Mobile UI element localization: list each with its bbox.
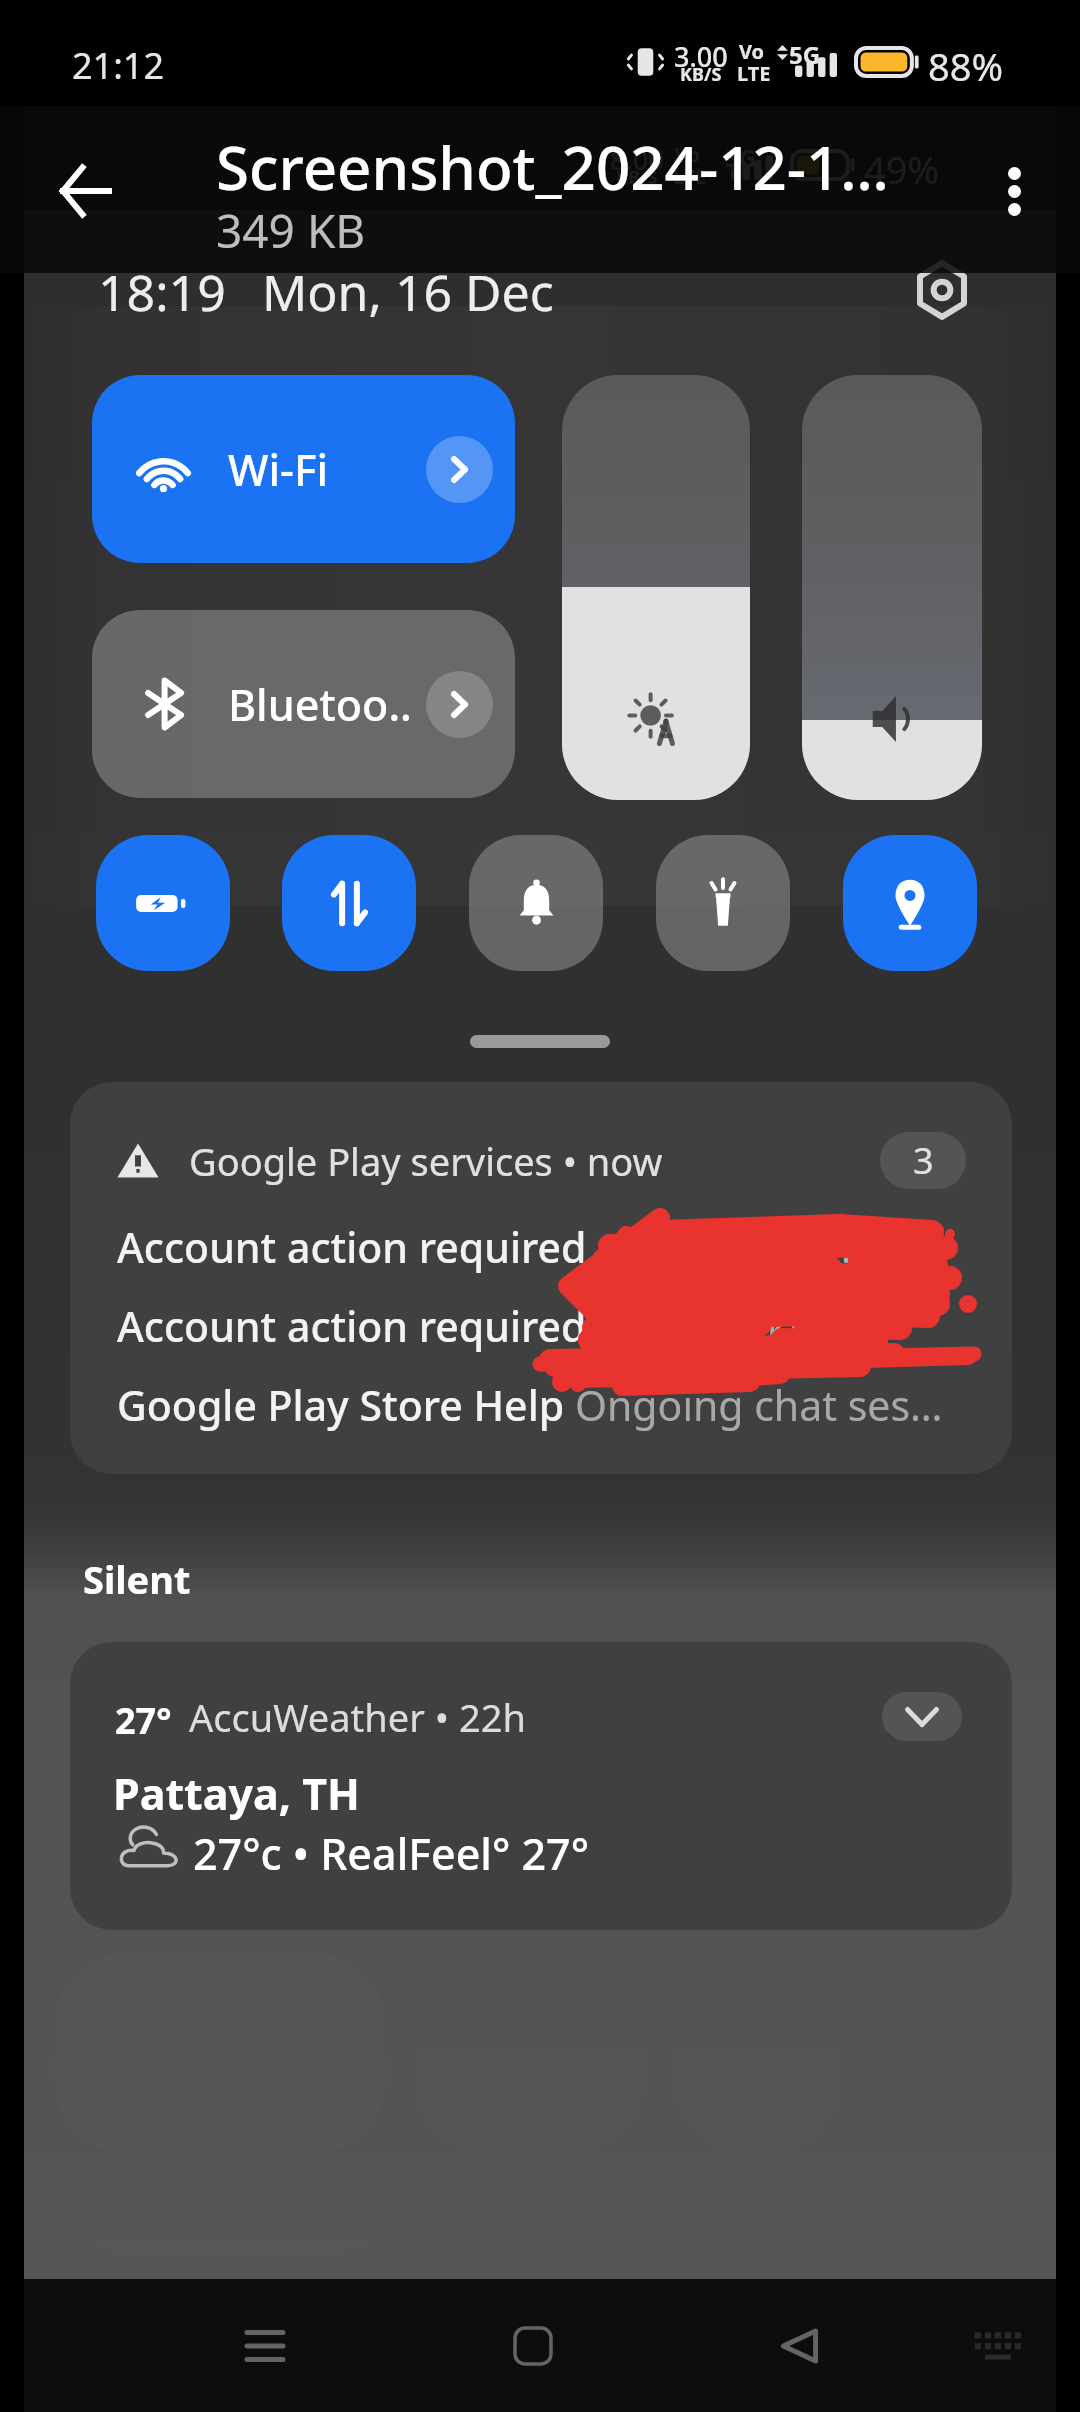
- staticText: 8.00: [610, 141, 664, 178]
- button[interactable]: Location: [843, 835, 977, 971]
- staticText: Google Play Store Help: [117, 1377, 575, 1433]
- staticText: 349 KB: [216, 199, 366, 262]
- button[interactable]: Mobile data: [282, 835, 416, 971]
- staticText: LTE: [673, 163, 707, 190]
- staticText: 27°: [115, 1696, 172, 1745]
- button[interactable]: Ring mode: [469, 835, 603, 971]
- button[interactable]: Back: [747, 2294, 851, 2398]
- staticText: Pattaya, TH: [113, 1764, 360, 1823]
- staticText: Ongoing chat ses…: [575, 1377, 943, 1433]
- staticText: nuu……… k@…: [598, 1219, 874, 1275]
- button[interactable]: More options: [962, 139, 1066, 243]
- button[interactable]: Flashlight: [656, 835, 790, 971]
- staticText: 21:12: [72, 41, 165, 90]
- staticText: 88%: [928, 40, 1004, 92]
- button[interactable]: Expand: [882, 1692, 962, 1741]
- staticText: LTE: [737, 60, 771, 87]
- staticText: 5G: [789, 38, 821, 71]
- staticText: AccuWeather • 22h: [189, 1691, 526, 1743]
- staticText: Silent: [83, 1553, 191, 1605]
- button[interactable]: 27°: [70, 1642, 1012, 1930]
- button[interactable]: Home: [481, 2294, 585, 2398]
- staticText: KB/S: [680, 62, 722, 87]
- staticText: Vo: [739, 38, 765, 65]
- staticText: Vo: [675, 141, 701, 168]
- staticText: Bluetoo..: [228, 675, 412, 734]
- button[interactable]: Recents: [213, 2294, 317, 2398]
- staticText: 3: [913, 1136, 934, 1185]
- button[interactable]: Settings: [898, 246, 986, 334]
- staticText: Google Play services • now: [189, 1135, 663, 1187]
- button[interactable]: Back: [32, 139, 136, 243]
- staticText: 3.00: [674, 38, 728, 75]
- button[interactable]: Keyboard: [946, 2294, 1050, 2398]
- staticText: Account action required: [117, 1298, 598, 1354]
- staticText: 49%: [864, 143, 940, 195]
- staticText: 5G: [725, 141, 757, 174]
- button[interactable]: Wi-Fi: [92, 375, 515, 563]
- button[interactable]: [562, 375, 750, 800]
- staticText: 18:19: [98, 258, 226, 326]
- button[interactable]: Battery saver: [96, 835, 230, 971]
- staticText: Wi-Fi: [228, 440, 329, 499]
- staticText: 27°c • RealFeel° 27°: [193, 1824, 590, 1883]
- button[interactable]: Bluetoo..: [92, 610, 515, 798]
- button[interactable]: Google Play services • now: [70, 1082, 1012, 1474]
- staticText: Screenshot_2024-12-1…: [216, 126, 916, 208]
- staticText: Account action required: [117, 1219, 598, 1275]
- staticText: KB/S: [616, 165, 658, 190]
- button[interactable]: [802, 375, 982, 800]
- staticText: na… …uckh 9…: [598, 1298, 881, 1354]
- staticText: Mon, 16 Dec: [262, 258, 554, 326]
